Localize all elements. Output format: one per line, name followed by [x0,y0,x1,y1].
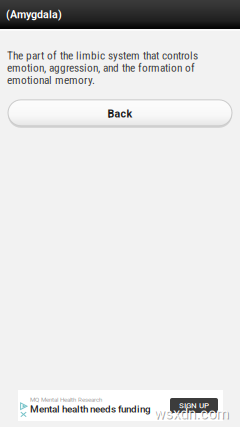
staticText: Back [107,108,132,120]
staticText: Mental health needs funding [30,403,151,415]
button[interactable]: Back [8,100,232,128]
staticText: SIGN UP [179,401,209,410]
staticText: The part of the limbic system that contr… [7,49,198,62]
staticText: wsxdn.com [154,405,229,422]
staticText: emotion, aggression, and the formation o… [7,61,195,75]
staticText: wsxdn.com [155,406,230,423]
staticText: MQ Mental Health Research [30,396,102,403]
button[interactable]: SIGN UP [170,398,218,413]
staticText: emotional memory. [7,74,95,87]
staticText: (Amygdala) [6,8,62,21]
